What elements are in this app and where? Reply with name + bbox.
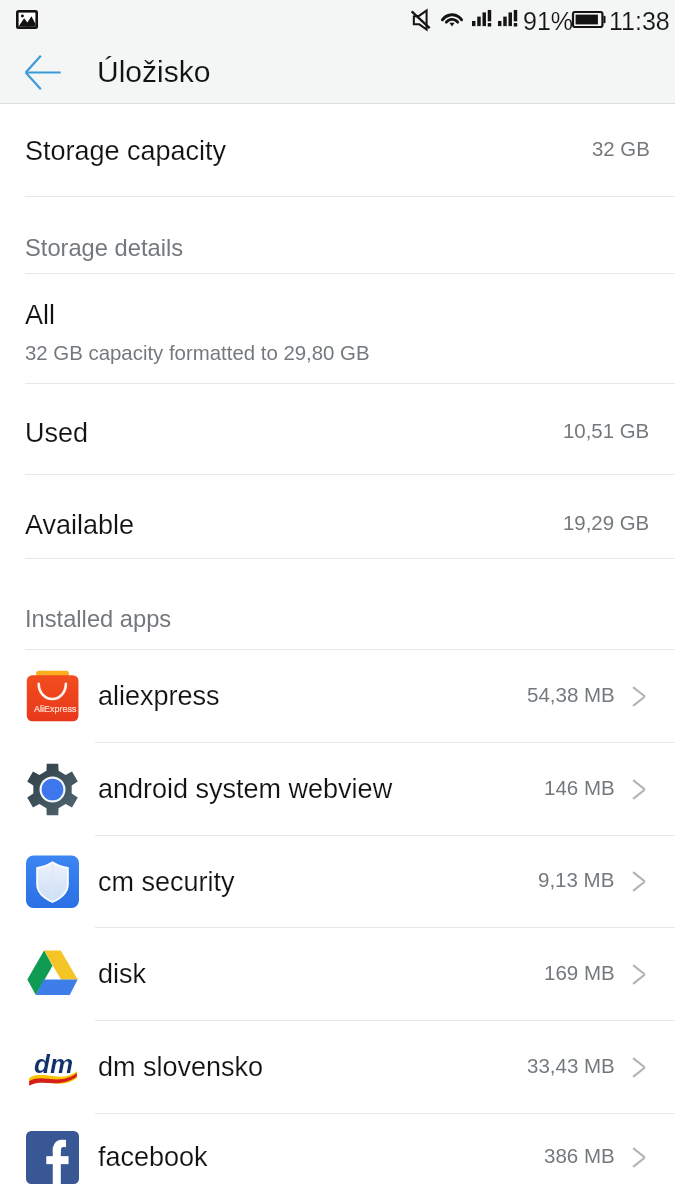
button[interactable]: Back xyxy=(8,41,76,104)
staticText: AliExpress xyxy=(34,704,77,714)
staticText: 33,43 MB xyxy=(527,1054,615,1077)
staticText: All xyxy=(25,300,56,330)
button[interactable]: AliExpress xyxy=(0,650,675,742)
staticText: facebook xyxy=(98,1142,208,1172)
staticText: dm slovensko xyxy=(98,1052,264,1082)
button[interactable]: Used xyxy=(0,384,675,474)
button[interactable]: Available xyxy=(0,475,675,558)
staticText: Úložisko xyxy=(97,55,211,89)
staticText: cm security xyxy=(98,867,235,897)
staticText: 169 MB xyxy=(544,961,615,984)
button[interactable]: Storage capacity xyxy=(0,104,675,196)
staticText: 11:38 xyxy=(609,7,670,35)
staticText: 146 MB xyxy=(544,776,615,799)
staticText: 91% xyxy=(523,7,574,35)
staticText: Storage details xyxy=(25,235,184,261)
staticText: Installed apps xyxy=(25,606,172,632)
button[interactable]: All xyxy=(0,274,675,383)
staticText: dm xyxy=(34,1049,73,1078)
staticText: disk xyxy=(98,959,147,989)
staticText: 19,29 GB xyxy=(563,512,650,535)
button[interactable]: dm xyxy=(0,1021,675,1113)
staticText: 32 GB xyxy=(592,138,650,161)
staticText: Available xyxy=(25,510,135,540)
button[interactable]: cm security xyxy=(0,836,675,927)
staticText: Storage capacity xyxy=(25,136,227,166)
staticText: Used xyxy=(25,418,89,448)
staticText: 54,38 MB xyxy=(527,683,615,706)
staticText: 32 GB capacity formatted to 29,80 GB xyxy=(25,342,370,365)
staticText: aliexpress xyxy=(98,681,220,711)
staticText: 10,51 GB xyxy=(563,420,650,443)
staticText: 386 MB xyxy=(544,1144,615,1167)
button[interactable]: disk xyxy=(0,928,675,1020)
button[interactable]: facebook xyxy=(0,1114,675,1200)
staticText: android system webview xyxy=(98,774,393,804)
staticText: 9,13 MB xyxy=(538,868,615,891)
button[interactable]: android system webview xyxy=(0,743,675,835)
